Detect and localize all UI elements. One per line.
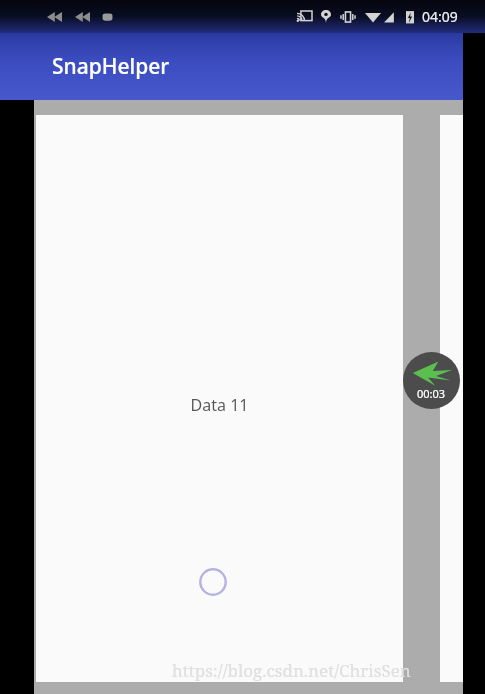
button[interactable]: [440, 115, 485, 682]
button[interactable]: Data 11: [36, 115, 403, 682]
staticText: SnapHelper: [52, 52, 170, 81]
staticText: 00:03: [417, 386, 446, 401]
staticText: 04:09: [422, 7, 458, 26]
staticText: Data 11: [36, 394, 403, 416]
staticText: https://blog.csdn.net/ChrisSen: [172, 659, 411, 682]
button[interactable]: Speed booster timer: [403, 352, 460, 409]
